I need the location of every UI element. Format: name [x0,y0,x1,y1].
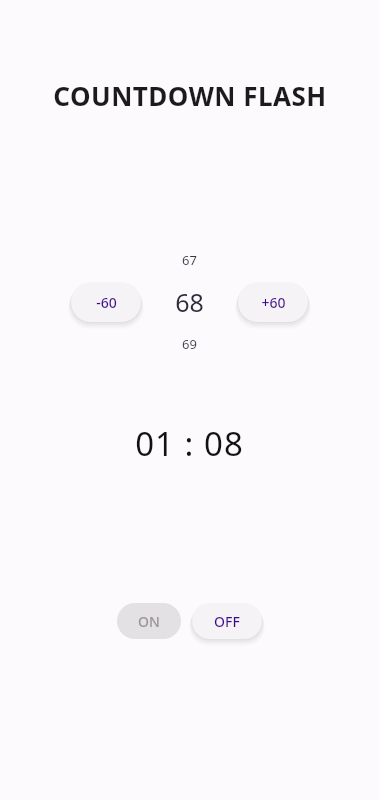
button[interactable]: ON [117,603,181,639]
staticText: 01 : 08 [135,421,244,466]
staticText: 67 [182,251,197,269]
button[interactable]: +60 [238,282,308,322]
button[interactable]: -60 [71,282,141,322]
staticText: ON [138,612,160,631]
staticText: COUNTDOWN FLASH [53,78,327,113]
staticText: -60 [96,293,117,312]
staticText: 68 [175,285,204,319]
staticText: 69 [182,335,197,353]
button[interactable]: OFF [192,603,262,639]
staticText: +60 [261,293,286,312]
staticText: OFF [214,612,240,631]
